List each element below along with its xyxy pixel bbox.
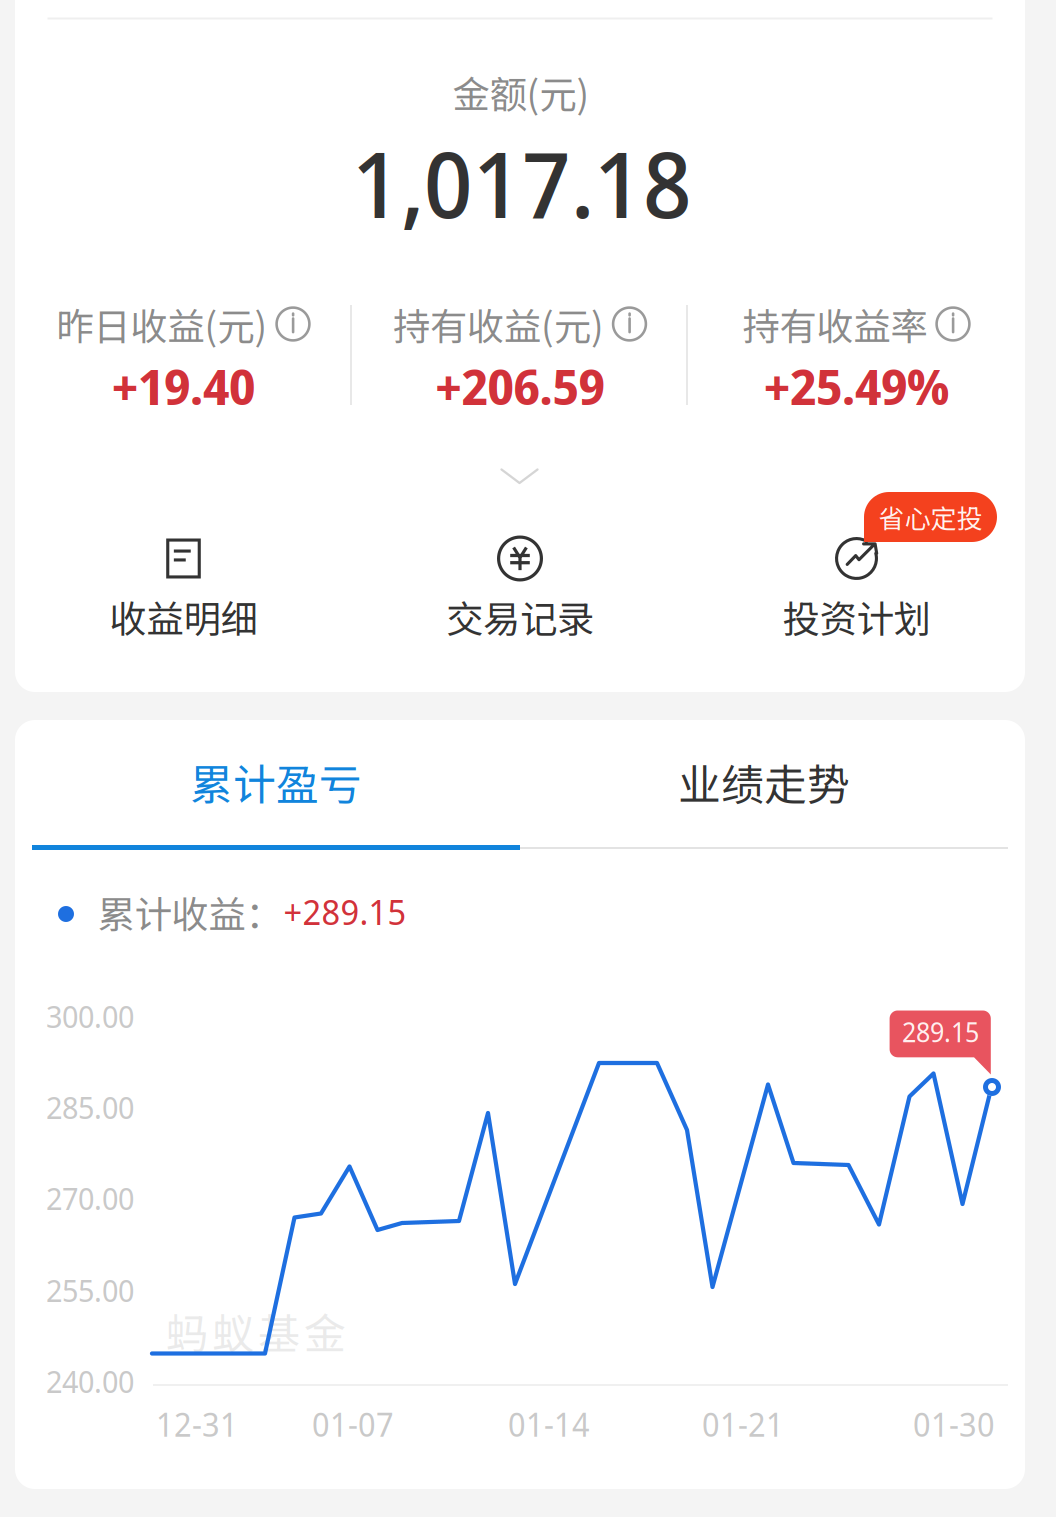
button[interactable]: 收益明细: [33, 531, 333, 643]
staticText: 累计盈亏: [190, 751, 362, 813]
staticText: 01-07: [312, 1402, 394, 1446]
staticText: +19.40: [112, 353, 255, 419]
staticText: 交易记录: [446, 589, 594, 644]
button[interactable]: 业绩走势: [520, 719, 1008, 844]
staticText: 01-21: [702, 1402, 784, 1446]
staticText: 1,017.18: [352, 122, 692, 244]
staticText: 持有收益(元): [393, 297, 604, 351]
button[interactable]: 省心定投: [864, 492, 997, 542]
staticText: 投资计划: [782, 589, 930, 644]
staticText: 285.00: [46, 1086, 134, 1128]
staticText: 270.00: [46, 1177, 134, 1219]
staticText: 蚂蚁基金: [166, 1301, 346, 1361]
staticText: 业绩走势: [678, 751, 850, 813]
staticText: +206.59: [435, 353, 604, 419]
staticText: 12-31: [156, 1402, 238, 1446]
staticText: +289.15: [283, 888, 406, 935]
staticText: 255.00: [46, 1269, 134, 1311]
button[interactable]: 持有收益(元): [354, 291, 686, 421]
button[interactable]: 交易记录: [370, 531, 670, 643]
staticText: +25.49%: [764, 353, 949, 419]
button[interactable]: 持有收益率: [690, 291, 1022, 421]
staticText: 省心定投: [878, 498, 982, 536]
button[interactable]: 投资计划: [706, 531, 1006, 643]
staticText: 收益明细: [109, 589, 257, 644]
staticText: 240.00: [46, 1360, 134, 1402]
staticText: 昨日收益(元): [56, 297, 267, 351]
staticText: 金额(元): [452, 65, 589, 119]
staticText: 持有收益率: [742, 297, 927, 351]
staticText: 01-30: [913, 1402, 995, 1446]
button[interactable]: 展开更多: [493, 462, 545, 492]
staticText: 01-14: [508, 1402, 590, 1446]
button[interactable]: 昨日收益(元): [17, 291, 349, 421]
button[interactable]: 累计盈亏: [32, 719, 520, 844]
staticText: 300.00: [46, 995, 134, 1037]
staticText: 289.15: [902, 1014, 979, 1050]
staticText: 累计收益：: [97, 885, 282, 939]
